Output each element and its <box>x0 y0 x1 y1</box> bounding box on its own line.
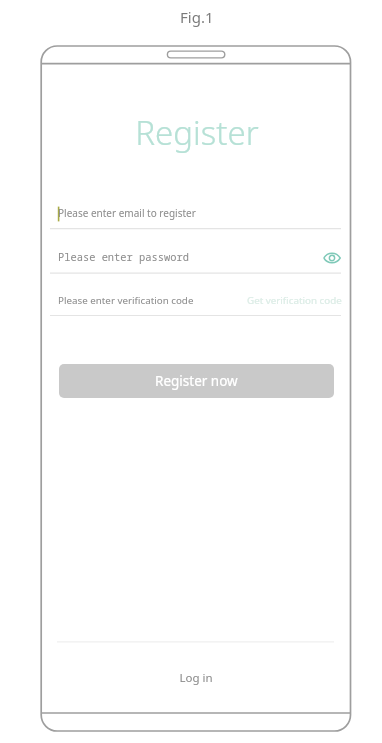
button[interactable]: Please enter verification code <box>57 294 332 312</box>
staticText: Fig.1 <box>180 7 214 27</box>
staticText: Please enter verification code <box>58 294 194 307</box>
staticText: Log in <box>179 670 213 686</box>
staticText: Please enter email to register <box>58 206 196 220</box>
button[interactable]: Get verification code <box>242 290 347 308</box>
staticText: Register <box>135 110 259 154</box>
button[interactable]: Please enter password <box>57 250 332 268</box>
button[interactable]: Register now <box>59 364 334 398</box>
staticText: Please enter password <box>58 250 189 264</box>
button[interactable]: Log in <box>41 670 350 692</box>
staticText: Get verification code <box>247 294 342 304</box>
staticText: Register now <box>155 372 238 390</box>
button[interactable]: Show password <box>319 249 345 267</box>
button[interactable]: Please enter email to register <box>57 206 332 224</box>
